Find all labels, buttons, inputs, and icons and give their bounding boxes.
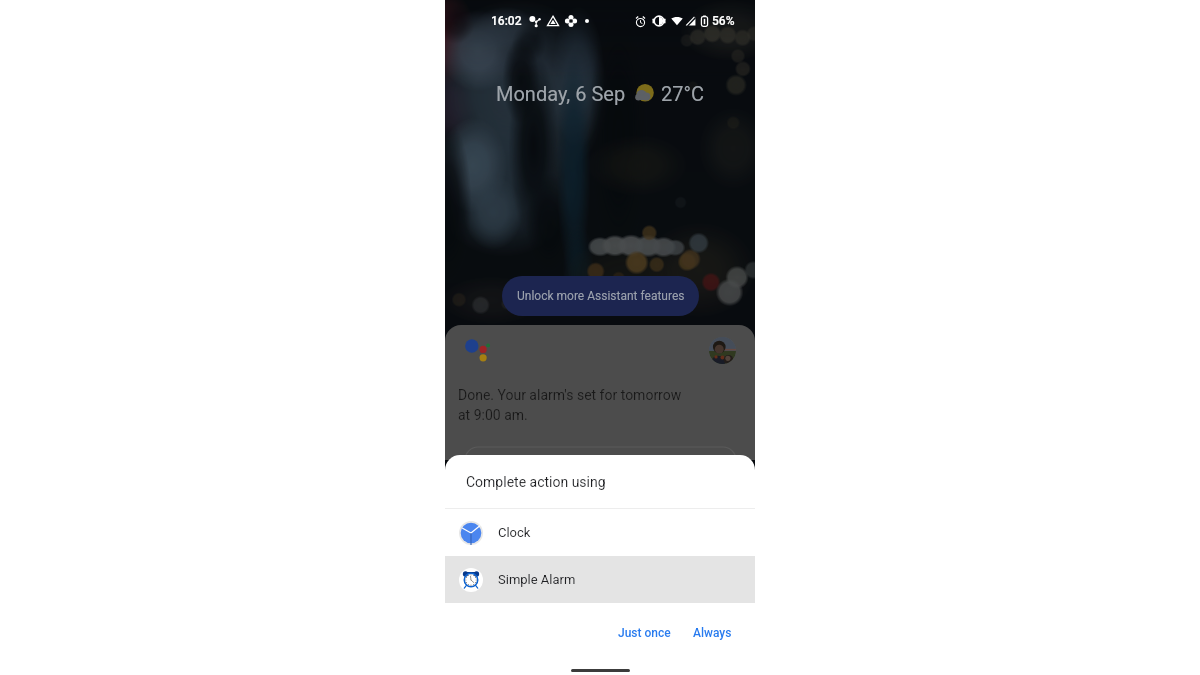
staticText: 56%: [712, 14, 735, 28]
button[interactable]: Clock: [445, 509, 755, 556]
button[interactable]: Just once: [607, 617, 682, 649]
staticText: Done. Your alarm's set for tomorrow at 9…: [458, 387, 682, 423]
staticText: Monday, 6 Sep: [496, 82, 626, 105]
button[interactable]: Unlock more Assistant features: [502, 276, 699, 316]
staticText: Always: [693, 626, 732, 640]
staticText: Unlock more Assistant features: [517, 289, 685, 303]
staticText: Simple Alarm: [498, 572, 576, 587]
staticText: 16:02: [491, 14, 522, 28]
button[interactable]: Simple Alarm: [445, 556, 755, 603]
staticText: Just once: [618, 626, 671, 640]
staticText: Clock: [498, 525, 531, 540]
button[interactable]: Always: [682, 617, 743, 649]
staticText: 27°C: [661, 82, 704, 105]
staticText: Complete action using: [466, 474, 606, 490]
